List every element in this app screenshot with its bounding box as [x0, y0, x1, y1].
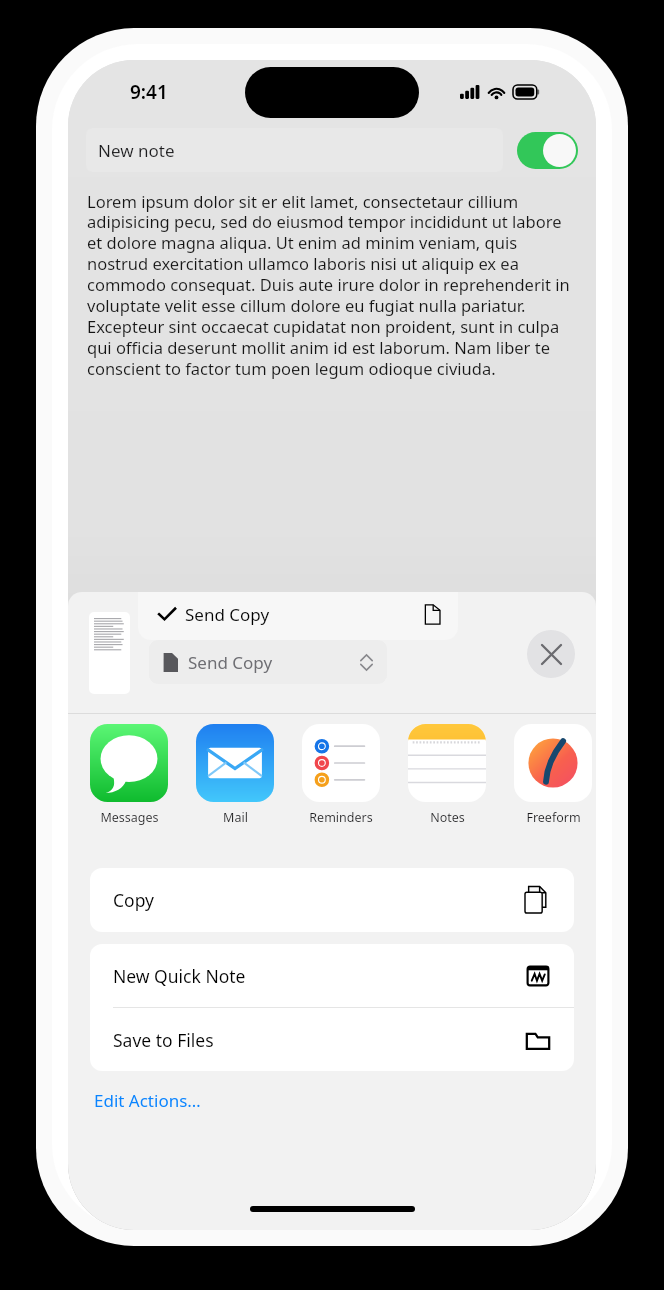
button[interactable]: Send Copy	[138, 592, 458, 640]
staticText: Send Copy	[188, 651, 273, 674]
staticText: Edit Actions…	[94, 1089, 201, 1112]
staticText: Lorem ipsum dolor sit er elit lamet, con…	[87, 190, 577, 380]
button[interactable]: Toggle	[517, 132, 578, 169]
staticText: Send Copy	[185, 603, 270, 626]
button[interactable]: Reminders	[302, 724, 380, 826]
button[interactable]: Save to Files	[90, 1008, 574, 1071]
button[interactable]: Notes	[408, 724, 486, 826]
staticText: 9:41	[130, 79, 168, 105]
staticText: Copy	[113, 888, 154, 912]
button[interactable]: Edit Actions…	[90, 1085, 205, 1116]
button[interactable]: New Quick Note	[90, 944, 574, 1007]
button[interactable]: Freeform	[514, 724, 592, 826]
button[interactable]: Mail	[196, 724, 274, 826]
button[interactable]: Document preview	[89, 612, 130, 694]
staticText: Freeform	[526, 809, 581, 826]
staticText: Notes	[430, 809, 465, 826]
staticText: Messages	[100, 809, 159, 826]
staticText: Reminders	[309, 809, 373, 826]
staticText: Save to Files	[113, 1028, 214, 1052]
button[interactable]: Copy	[90, 868, 574, 932]
staticText: New Quick Note	[113, 964, 246, 988]
staticText: New note	[98, 139, 175, 162]
staticText: Mail	[223, 809, 248, 826]
button[interactable]: Close	[527, 630, 575, 678]
button[interactable]: New note	[86, 128, 503, 172]
button[interactable]: Send Copy	[149, 640, 387, 684]
button[interactable]: Messages	[90, 724, 168, 826]
